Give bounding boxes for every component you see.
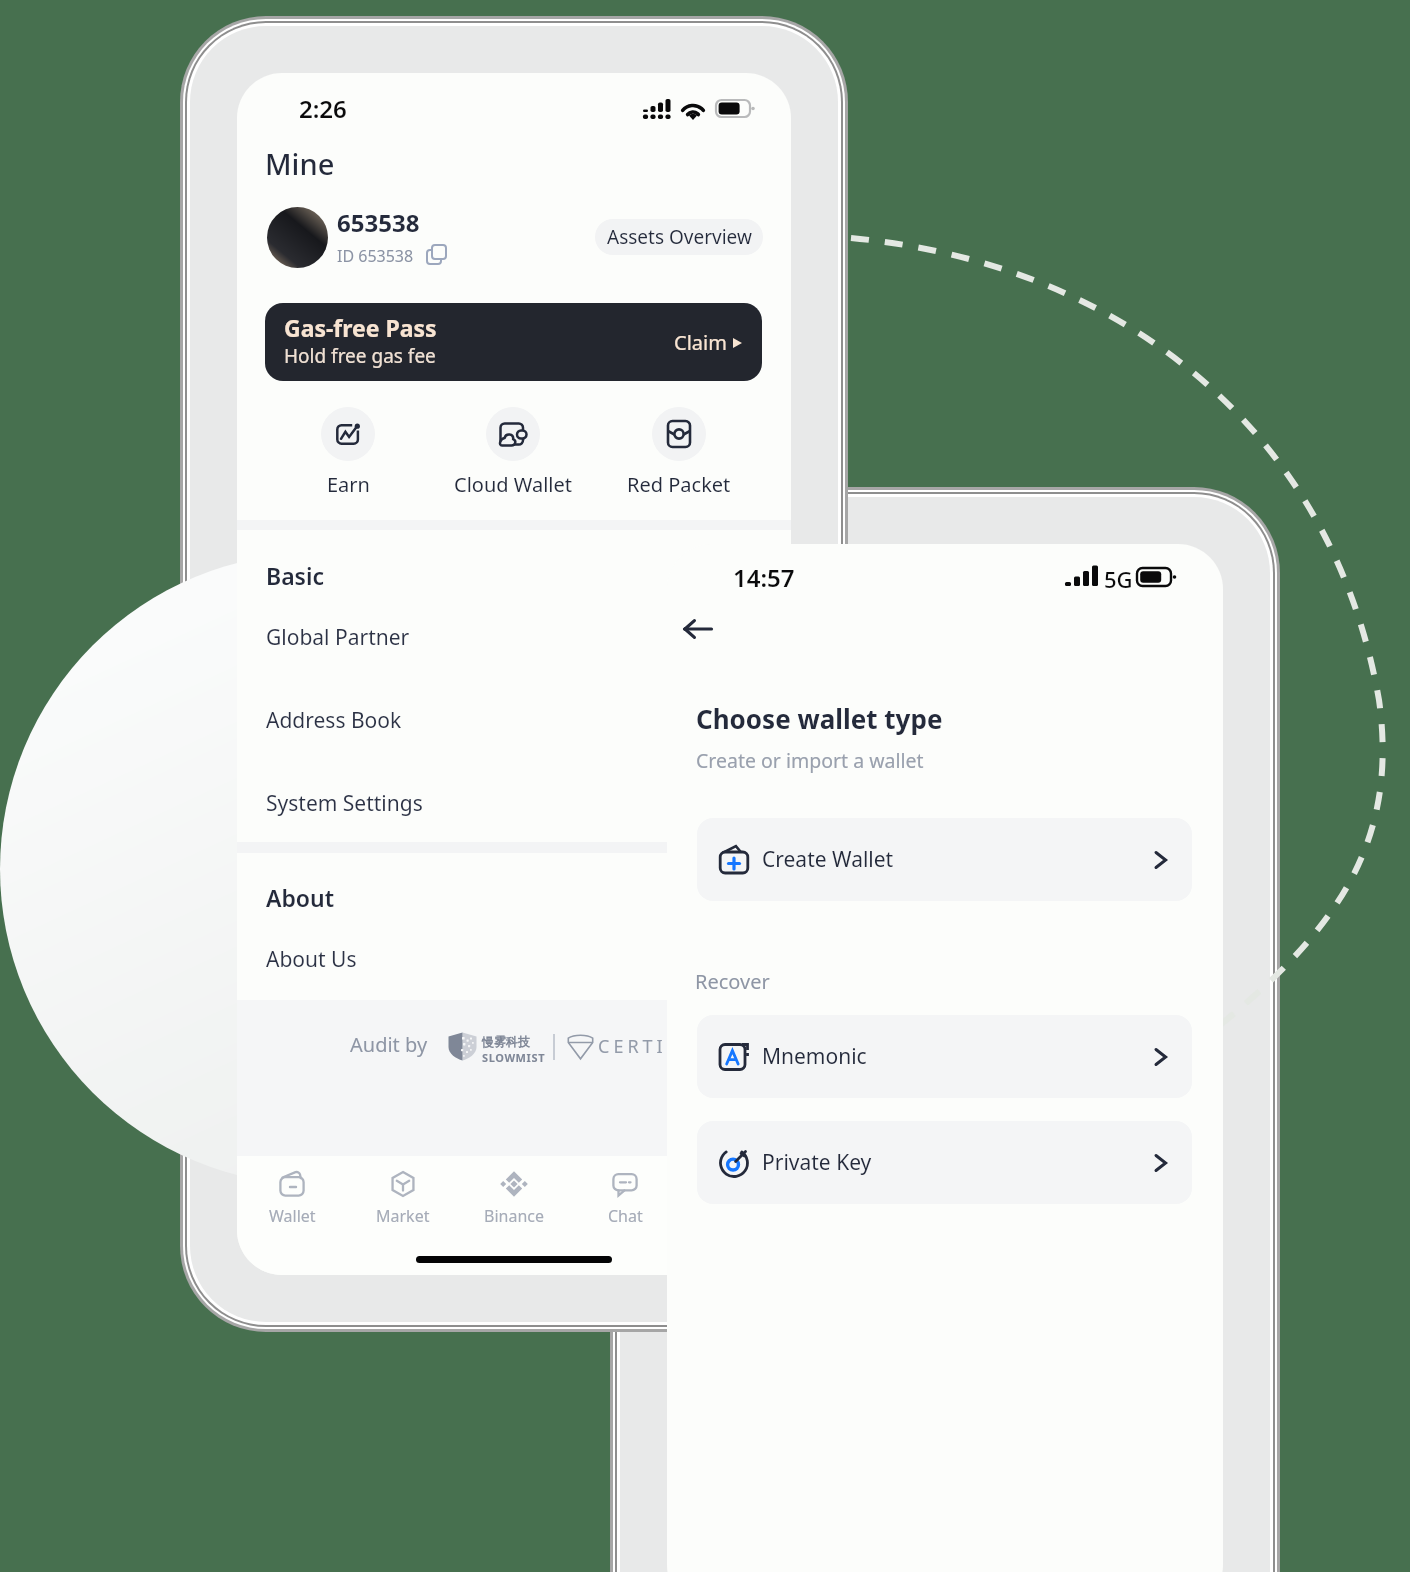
staticText: Claim — [674, 329, 727, 356]
button[interactable]: Market — [348, 1170, 458, 1227]
button[interactable]: Chat — [570, 1170, 680, 1227]
button[interactable]: Cloud Wallet — [443, 407, 583, 498]
staticText: System Settings — [266, 789, 423, 818]
button[interactable]: Create Wallet — [697, 818, 1192, 901]
staticText: Wallet — [269, 1205, 316, 1227]
button[interactable]: Assets Overview — [595, 219, 763, 255]
staticText: About Us — [266, 945, 357, 974]
button[interactable]: Back — [672, 603, 724, 655]
staticText: Recover — [695, 968, 770, 995]
staticText: ID 653538 — [337, 245, 414, 267]
button[interactable]: About Us — [237, 918, 791, 1001]
button[interactable]: System Settings — [237, 762, 791, 845]
staticText: Red Packet — [627, 471, 731, 498]
staticText: Global Partner — [266, 623, 410, 652]
button[interactable]: Global Partner — [237, 596, 791, 679]
button[interactable]: Gas-free Pass — [265, 303, 762, 381]
staticText: Private Key — [762, 1148, 872, 1177]
staticText: 5G — [1104, 564, 1133, 594]
staticText: Market — [376, 1205, 430, 1227]
button[interactable]: Discover — [681, 1170, 791, 1227]
staticText: 2:26 — [299, 92, 347, 125]
staticText: Hold free gas fee — [284, 343, 436, 369]
staticText: Mnemonic — [762, 1042, 867, 1071]
staticText: CERTIK — [598, 1034, 682, 1059]
staticText: Basic — [266, 560, 325, 591]
button[interactable]: Red Packet — [609, 407, 749, 498]
staticText: SLOWMIST — [482, 1050, 546, 1065]
staticText: Create Wallet — [762, 845, 894, 874]
staticText: Binance — [484, 1205, 544, 1227]
staticText: Gas-free Pass — [284, 312, 437, 343]
staticText: 慢雾科技 — [482, 1034, 530, 1049]
button[interactable]: Earn — [278, 407, 418, 498]
staticText: Choose wallet type — [696, 701, 943, 736]
staticText: Cloud Wallet — [454, 471, 572, 498]
button[interactable]: Private Key — [697, 1121, 1192, 1204]
staticText: Earn — [327, 471, 370, 498]
staticText: Create or import a wallet — [696, 747, 924, 774]
button[interactable]: Wallet — [237, 1170, 347, 1227]
staticText: Mine — [265, 144, 335, 183]
staticText: Chat — [608, 1205, 643, 1227]
button[interactable]: Address Book — [237, 679, 791, 762]
staticText: 14:57 — [733, 561, 795, 594]
staticText: Audit by — [350, 1031, 428, 1058]
staticText: Address Book — [266, 706, 402, 735]
staticText: Assets Overview — [607, 224, 752, 250]
button[interactable]: Binance — [459, 1170, 569, 1227]
staticText: 653538 — [337, 206, 420, 239]
staticText: About — [266, 882, 335, 913]
button[interactable]: Mnemonic — [697, 1015, 1192, 1098]
